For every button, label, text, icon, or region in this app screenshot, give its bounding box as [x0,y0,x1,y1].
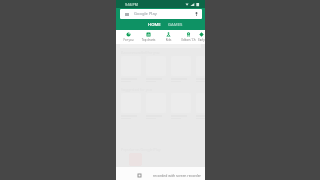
staticText: 9:56 PM [125,2,138,7]
button[interactable]: HOME [143,20,165,30]
button[interactable]: Early [198,30,205,44]
staticText: Kids [159,38,178,42]
other: Voice search [195,12,198,16]
staticText: Top charts [139,38,158,42]
staticText: For you [119,38,138,42]
button[interactable]: GAMES [164,20,186,30]
other: Recorder badge [138,174,141,177]
staticText: Early [198,38,205,42]
button[interactable]: Top charts [138,30,158,44]
staticText: GAMES [168,22,183,28]
button[interactable]: For you [118,30,138,44]
staticText: Google Play [134,11,157,17]
staticText: Editors' Ch [179,38,198,42]
button[interactable]: Kids [158,30,178,44]
button[interactable]: Editors' Ch [178,30,198,44]
button[interactable]: Open navigation menu [120,9,202,19]
staticText: recorded with screen recorder [153,173,201,178]
staticText: HOME [148,22,161,28]
